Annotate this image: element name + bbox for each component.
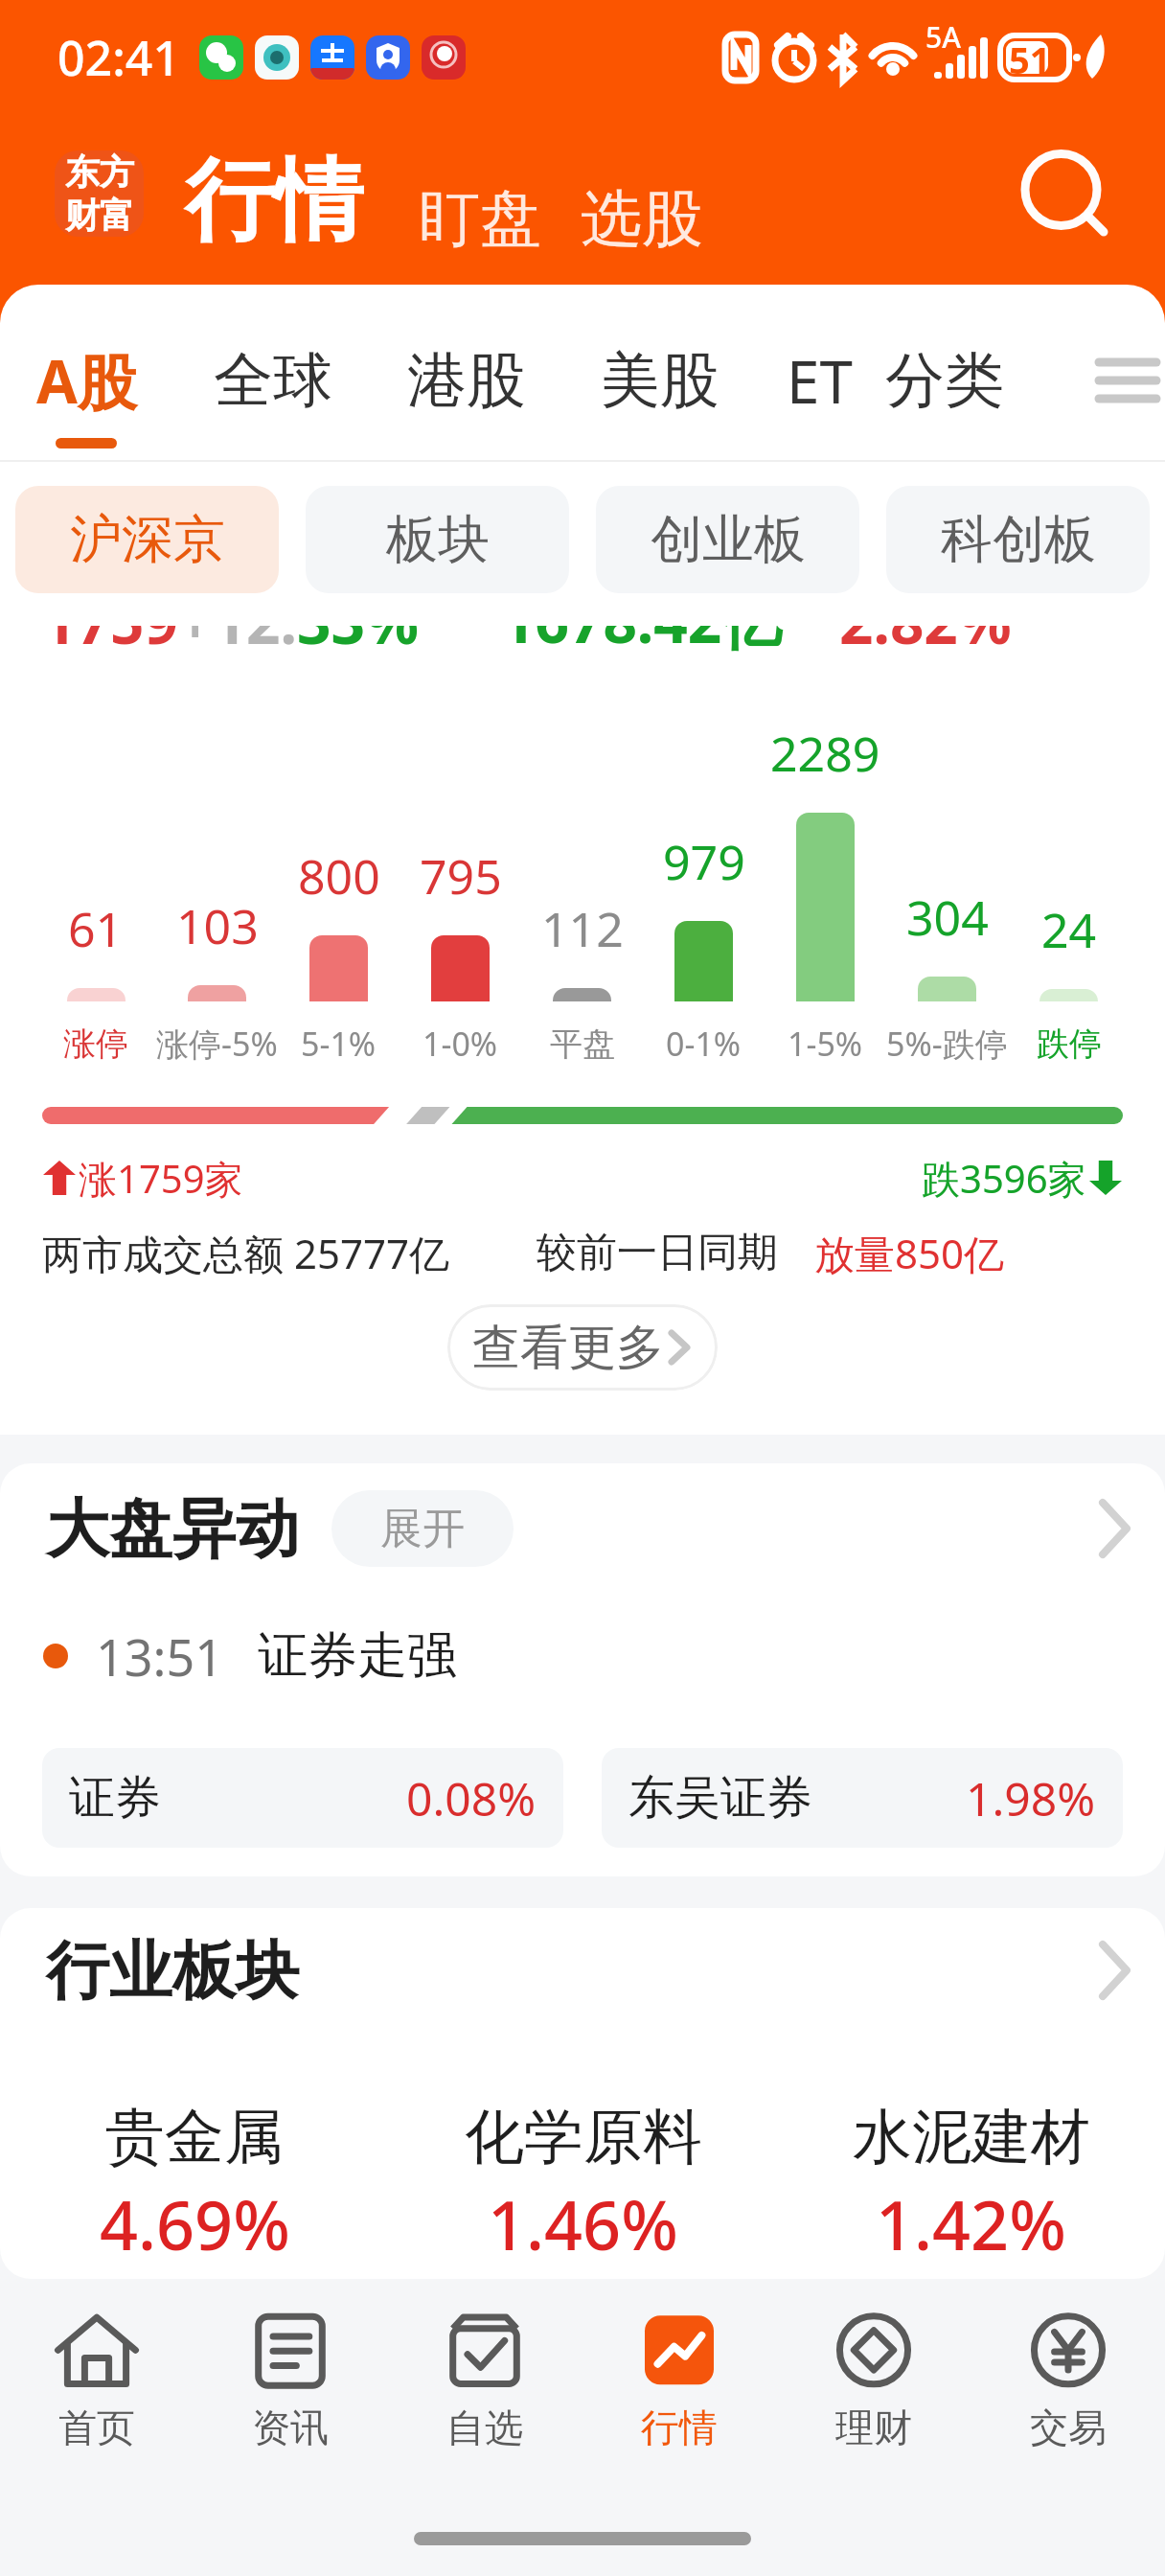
staticText: 800 xyxy=(298,843,380,908)
staticText: 放量850亿 xyxy=(814,1226,1005,1280)
staticText: 化学原料 xyxy=(465,2100,702,2174)
staticText: 跌3596家 xyxy=(922,1152,1086,1205)
staticText: 平盘 xyxy=(550,1023,615,1065)
staticText: 大盘异动 xyxy=(46,1489,299,1569)
staticText: 科创板 xyxy=(941,507,1096,572)
button[interactable]: 首页 xyxy=(0,2283,194,2501)
staticText: 1-5% xyxy=(788,1022,863,1066)
button[interactable]: 贵金属 xyxy=(0,2033,389,2269)
button[interactable]: 交易 xyxy=(971,2283,1165,2501)
staticText: 行情 xyxy=(185,145,363,257)
button[interactable]: ET xyxy=(787,340,853,421)
staticText: 分类 xyxy=(885,343,1004,418)
button[interactable]: 科创板 xyxy=(886,486,1150,593)
staticText: 5%-跌停 xyxy=(886,1022,1008,1066)
staticText: +12. xyxy=(178,626,297,656)
staticText: 行业板块 xyxy=(46,1931,299,2011)
button[interactable]: 行情 xyxy=(582,2283,776,2501)
staticText: 795 xyxy=(420,843,502,908)
button[interactable]: 板块 xyxy=(306,486,569,593)
staticText: 查看更多 xyxy=(472,1318,664,1378)
button[interactable]: 自选 xyxy=(387,2283,582,2501)
staticText: 沪深京 xyxy=(70,507,225,572)
button[interactable]: 美股 xyxy=(601,343,720,418)
button[interactable]: 创业板 xyxy=(596,486,859,593)
staticText: 2289 xyxy=(770,721,880,786)
staticText: 较前一日同期 xyxy=(537,1228,778,1278)
staticText: 东方 xyxy=(65,150,134,194)
staticText: 涨1759家 xyxy=(79,1152,243,1205)
staticText: 涨停-5% xyxy=(156,1022,278,1066)
button[interactable]: 资讯 xyxy=(194,2283,387,2501)
button[interactable]: Search xyxy=(1008,134,1123,249)
button[interactable]: 展开 xyxy=(331,1490,514,1567)
staticText: 水泥建材 xyxy=(853,2100,1090,2174)
staticText: 涨停 xyxy=(63,1023,128,1065)
staticText: 全球 xyxy=(214,343,332,418)
button[interactable]: 沪深京 xyxy=(15,486,279,593)
staticText: 港股 xyxy=(407,343,526,418)
staticText: 证券 xyxy=(69,1769,161,1827)
button[interactable]: 证券 xyxy=(42,1748,563,1848)
staticText: ET xyxy=(787,340,853,421)
staticText: 24 xyxy=(1041,897,1097,962)
staticText: 美股 xyxy=(601,343,720,418)
staticText: 1759 xyxy=(42,626,178,656)
button[interactable]: 全球 xyxy=(214,343,332,418)
staticText: 跌停 xyxy=(1037,1023,1102,1065)
staticText: 选股 xyxy=(581,180,703,258)
staticText: 东吴证券 xyxy=(628,1769,812,1827)
button[interactable]: 东吴证券 xyxy=(602,1748,1123,1848)
button[interactable]: More market moves xyxy=(1079,1492,1152,1565)
staticText: 行情 xyxy=(641,2403,718,2451)
staticText: 304 xyxy=(906,885,989,950)
button[interactable]: A股 xyxy=(36,340,137,422)
staticText: 资讯 xyxy=(252,2403,329,2451)
staticText: 贵金属 xyxy=(105,2100,284,2174)
staticText: 51 xyxy=(1009,34,1051,84)
staticText: 财富 xyxy=(65,194,134,237)
staticText: 1.46% xyxy=(488,2178,678,2269)
button[interactable]: 水泥建材 xyxy=(777,2033,1165,2269)
staticText: 979 xyxy=(663,829,745,894)
staticText: 证券走强 xyxy=(258,1624,457,1688)
staticText: 1-0% xyxy=(423,1022,498,1066)
button[interactable]: Menu xyxy=(1090,343,1165,418)
button[interactable]: 盯盘 xyxy=(419,180,541,258)
staticText: 103 xyxy=(176,893,259,958)
staticText: 交易 xyxy=(1030,2403,1107,2451)
staticText: 1678.42亿 xyxy=(501,626,782,656)
staticText: 盯盘 xyxy=(419,180,541,258)
staticText: 33% xyxy=(297,626,419,656)
button[interactable]: 选股 xyxy=(581,180,703,258)
staticText: 2.82% xyxy=(839,626,1012,656)
staticText: 5A xyxy=(925,17,961,57)
staticText: 02:41 xyxy=(57,25,180,90)
staticText: 板块 xyxy=(386,507,490,572)
staticText: 112 xyxy=(541,896,624,961)
staticText: 理财 xyxy=(835,2403,912,2451)
button[interactable]: More sectors xyxy=(1079,1934,1152,2007)
staticText: 0.08% xyxy=(406,1767,537,1829)
staticText: 创业板 xyxy=(651,507,806,572)
staticText: 1.98% xyxy=(966,1767,1096,1829)
staticText: 展开 xyxy=(380,1503,465,1555)
staticText: 5-1% xyxy=(301,1022,377,1066)
staticText: 61 xyxy=(68,896,124,961)
staticText: A股 xyxy=(36,340,137,422)
button[interactable]: 理财 xyxy=(776,2283,971,2501)
staticText: 首页 xyxy=(58,2403,135,2451)
button[interactable]: 查看更多 xyxy=(447,1304,718,1391)
staticText: 两市成交总额 25777亿 xyxy=(42,1226,450,1280)
staticText: 0-1% xyxy=(666,1022,742,1066)
button[interactable]: 化学原料 xyxy=(389,2033,777,2269)
staticText: 自选 xyxy=(446,2403,523,2451)
staticText: 13:51 xyxy=(96,1622,223,1690)
staticText: 1.42% xyxy=(876,2178,1066,2269)
button[interactable]: 港股 xyxy=(407,343,526,418)
staticText: 4.69% xyxy=(100,2178,290,2269)
button[interactable]: 分类 xyxy=(885,343,1004,418)
